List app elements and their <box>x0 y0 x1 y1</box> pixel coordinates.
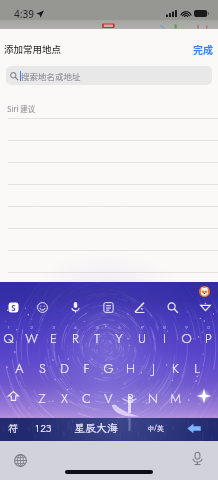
button[interactable]: Y <box>108 324 130 348</box>
button[interactable]: Hide keyboard <box>196 298 214 316</box>
button[interactable]: L <box>186 354 208 378</box>
staticText: Y <box>115 329 123 348</box>
staticText: 6 <box>118 324 121 331</box>
button[interactable]: Voice input <box>66 298 84 316</box>
button[interactable]: R <box>64 324 86 348</box>
staticText: C <box>82 389 91 408</box>
button[interactable]: G <box>97 354 119 378</box>
staticText: D <box>60 359 69 378</box>
staticText: 搜索地名或地址 <box>21 70 81 82</box>
staticText: O <box>181 329 192 348</box>
staticText: Z <box>38 389 46 408</box>
button[interactable]: F <box>75 354 97 378</box>
staticText: V <box>104 389 113 408</box>
button[interactable]: S <box>31 354 53 378</box>
button[interactable]: B <box>119 384 141 408</box>
staticText: 4:39 <box>14 7 34 21</box>
staticText: 7 <box>141 324 144 331</box>
button[interactable]: Return <box>182 416 206 440</box>
button[interactable]: 中/英 <box>143 416 167 440</box>
button[interactable]: Q <box>0 324 19 348</box>
staticText: G <box>103 359 114 378</box>
button[interactable]: 星辰大海 <box>66 416 126 440</box>
staticText: Siri 建议 <box>7 103 36 114</box>
button[interactable]: U <box>131 324 153 348</box>
staticText: 添加常用地点 <box>4 42 62 56</box>
button[interactable]: J <box>142 354 164 378</box>
button[interactable]: O <box>175 324 197 348</box>
staticText: M <box>170 389 181 408</box>
staticText: T <box>94 329 100 348</box>
button[interactable]: Next keyboard <box>12 452 29 469</box>
staticText: B <box>127 389 134 408</box>
staticText: A <box>15 359 24 378</box>
staticText: 中/英 <box>147 424 164 433</box>
button[interactable]: Delete <box>193 385 215 407</box>
button[interactable]: 搜索地名或地址 <box>6 66 212 85</box>
button[interactable]: C <box>75 384 97 408</box>
staticText: 1 <box>7 324 10 331</box>
button[interactable]: Emoji <box>33 298 51 316</box>
button[interactable]: D <box>53 354 75 378</box>
staticText: 5 <box>96 324 99 331</box>
staticText: 9 <box>185 324 188 331</box>
staticText: Q <box>3 329 14 348</box>
staticText: I <box>163 329 166 348</box>
button[interactable]: Clipboard <box>99 298 117 316</box>
button[interactable]: Shift <box>2 385 24 407</box>
staticText: 3 <box>52 324 55 331</box>
staticText: 2 <box>30 324 33 331</box>
button[interactable]: Z <box>31 384 53 408</box>
button[interactable]: A <box>8 354 30 378</box>
staticText: L <box>194 359 200 378</box>
staticText: 8 <box>163 324 166 331</box>
staticText: S <box>11 302 16 313</box>
button[interactable]: N <box>142 384 164 408</box>
button[interactable]: K <box>164 354 186 378</box>
staticText: H <box>126 359 135 378</box>
staticText: 完成 <box>193 42 213 56</box>
staticText: 星辰大海 <box>74 421 118 435</box>
button[interactable]: H <box>119 354 141 378</box>
button[interactable]: W <box>20 324 42 348</box>
button[interactable]: 完成 <box>185 37 218 61</box>
button[interactable]: X <box>53 384 75 408</box>
staticText: X <box>61 389 68 408</box>
button[interactable]: P <box>197 324 218 348</box>
button[interactable]: M <box>164 384 186 408</box>
button[interactable]: Handwriting <box>130 298 148 316</box>
staticText: N <box>148 389 158 408</box>
staticText: K <box>172 359 179 378</box>
button[interactable]: Account <box>199 286 210 297</box>
staticText: 0 <box>207 324 210 331</box>
button[interactable]: Dictation <box>190 451 205 466</box>
staticText: 123 <box>34 422 52 435</box>
button[interactable]: E <box>42 324 64 348</box>
button[interactable]: 123 <box>31 416 55 440</box>
staticText: P <box>205 329 212 348</box>
staticText: 4 <box>74 324 77 331</box>
staticText: F <box>83 359 90 378</box>
staticText: E <box>50 329 57 348</box>
button[interactable]: Sogou input <box>8 302 19 313</box>
staticText: J <box>152 359 155 378</box>
button[interactable]: Search <box>163 298 181 316</box>
staticText: S <box>39 359 46 378</box>
button[interactable]: T <box>86 324 108 348</box>
staticText: W <box>25 329 38 348</box>
button[interactable]: 符 <box>1 416 24 440</box>
staticText: R <box>72 329 79 348</box>
staticText: U <box>138 329 146 348</box>
staticText: 符 <box>8 422 18 435</box>
button[interactable]: I <box>153 324 175 348</box>
button[interactable]: V <box>97 384 119 408</box>
